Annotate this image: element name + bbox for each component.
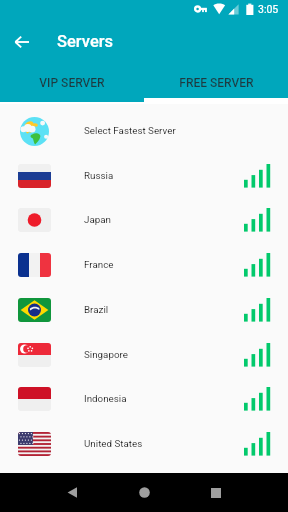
staticText: VIP SERVER [39, 76, 105, 90]
staticText: Singapore [84, 349, 128, 360]
button[interactable]: Russia [0, 153, 288, 198]
staticText: United States [84, 438, 143, 449]
staticText: Servers [57, 32, 114, 51]
button[interactable]: France [0, 242, 288, 287]
button[interactable]: Japan [0, 197, 288, 242]
button[interactable]: Back [50, 473, 94, 512]
staticText: Indonesia [84, 393, 127, 404]
button[interactable]: Select Fastest Server [0, 108, 288, 153]
staticText: Japan [84, 214, 111, 225]
staticText: Brazil [84, 304, 109, 315]
button[interactable]: United States [0, 421, 288, 466]
staticText: FREE SERVER [179, 76, 254, 90]
button[interactable]: Indonesia [0, 376, 288, 421]
button[interactable]: Home [122, 473, 166, 512]
button[interactable]: VIP SERVER [0, 64, 144, 102]
button[interactable]: Back [4, 24, 40, 60]
button[interactable]: Brazil [0, 287, 288, 332]
button[interactable]: FREE SERVER [144, 64, 288, 102]
staticText: France [84, 259, 114, 270]
staticText: Russia [84, 170, 114, 181]
button[interactable]: Recent apps [194, 473, 238, 512]
staticText: Select Fastest Server [84, 125, 176, 136]
button[interactable]: Singapore [0, 332, 288, 377]
staticText: 3:05 [258, 3, 279, 15]
